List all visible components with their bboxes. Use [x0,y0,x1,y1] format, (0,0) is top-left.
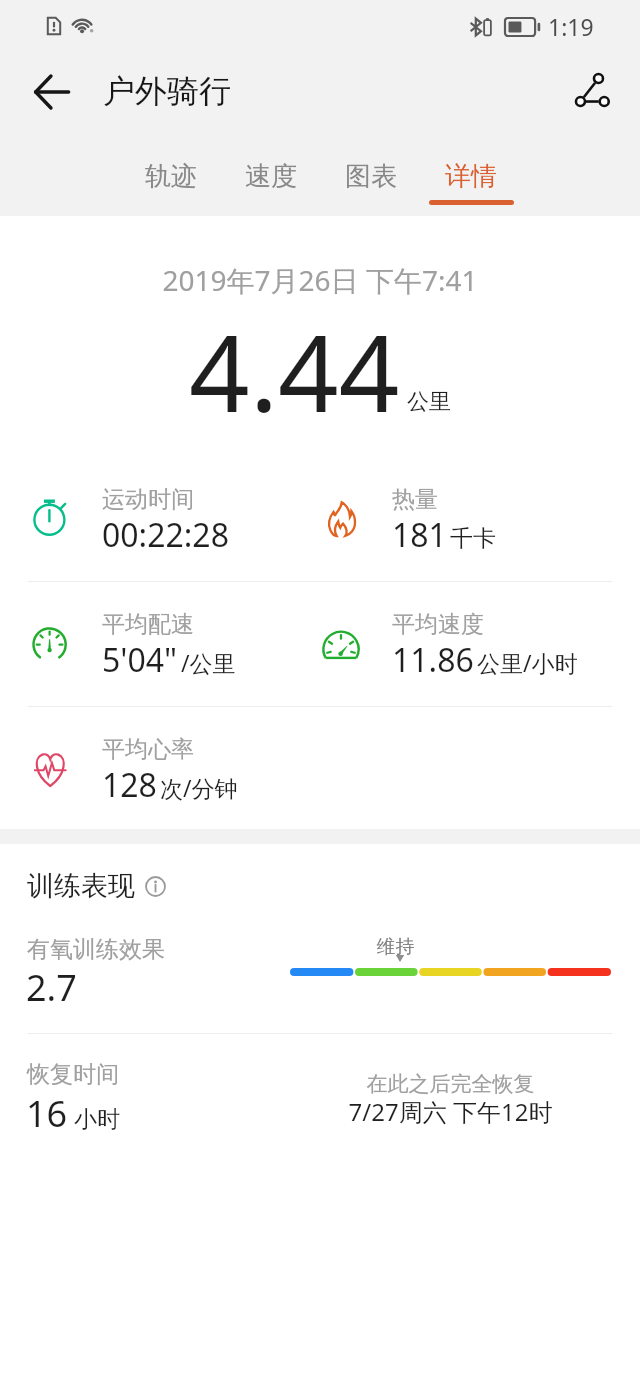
staticText: 速度 [245,160,297,193]
staticText: 公里 [407,388,451,416]
staticText: 00:22:28 [102,513,229,557]
staticText: 平均配速 [102,610,194,639]
staticText: 1:19 [548,11,594,42]
staticText: 户外骑行 [103,71,231,111]
button[interactable]: 轨迹 [121,147,221,217]
staticText: 图表 [345,160,397,193]
staticText: 详情 [445,160,497,193]
button[interactable]: 速度 [221,147,321,217]
staticText: 公里/小时 [477,647,578,678]
staticText: 有氧训练效果 [27,935,165,964]
staticText: 平均心率 [102,735,194,764]
staticText: 2.7 [26,963,77,1012]
button[interactable]: 平均速度 [320,581,640,706]
staticText: 7/27周六 下午12时 [290,1095,611,1128]
staticText: 千卡 [450,524,496,553]
button[interactable]: 训练表现 [27,869,166,903]
staticText: 运动时间 [102,485,194,514]
button[interactable]: 详情 [421,147,521,217]
button[interactable]: 图表 [321,147,421,217]
button[interactable]: 平均心率 [0,706,320,831]
button[interactable]: 运动时间 [0,456,320,581]
staticText: 181 [392,513,447,557]
staticText: 16 [26,1089,68,1138]
button[interactable]: 热量 [320,456,640,581]
staticText: 次/分钟 [160,772,238,803]
staticText: 平均速度 [392,610,484,639]
staticText: 热量 [392,485,438,514]
staticText: 2019年7月26日 下午7:41 [0,261,640,299]
staticText: 小时 [74,1105,120,1134]
button[interactable]: 平均配速 [0,581,320,706]
button[interactable]: Back [35,75,69,109]
staticText: 11.86 [392,638,474,682]
button[interactable]: Share [574,72,610,108]
staticText: 恢复时间 [27,1060,119,1089]
staticText: 训练表现 [27,869,135,903]
staticText: 5'04" [102,638,178,682]
staticText: 128 [102,763,157,807]
staticText: /公里 [181,647,236,678]
staticText: 轨迹 [145,160,197,193]
staticText: 在此之后完全恢复 [290,1071,611,1097]
staticText: 维持 [286,935,505,959]
staticText: 4.44 [189,299,400,443]
